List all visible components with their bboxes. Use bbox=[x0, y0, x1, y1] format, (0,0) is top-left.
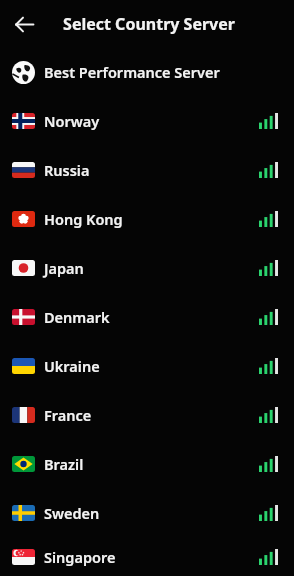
button[interactable]: Norway bbox=[0, 96, 294, 145]
button[interactable]: Russia bbox=[0, 145, 294, 194]
button[interactable]: Hong Kong bbox=[0, 194, 294, 243]
button[interactable]: Brazil bbox=[0, 439, 294, 488]
staticText: Ukraine bbox=[44, 356, 100, 376]
staticText: Russia bbox=[44, 160, 90, 180]
button[interactable]: Singapore bbox=[0, 537, 294, 576]
staticText: Select Country Server bbox=[63, 13, 235, 35]
staticText: France bbox=[44, 405, 92, 425]
staticText: Denmark bbox=[44, 307, 110, 327]
staticText: Japan bbox=[44, 258, 84, 278]
button[interactable]: Best Performance Server bbox=[0, 48, 294, 96]
button[interactable]: Denmark bbox=[0, 292, 294, 341]
button[interactable]: Sweden bbox=[0, 488, 294, 537]
staticText: Norway bbox=[44, 111, 100, 131]
button[interactable]: France bbox=[0, 390, 294, 439]
button[interactable]: Japan bbox=[0, 243, 294, 292]
staticText: Sweden bbox=[44, 503, 100, 523]
button[interactable]: Ukraine bbox=[0, 341, 294, 390]
staticText: Brazil bbox=[44, 454, 84, 474]
staticText: Singapore bbox=[44, 547, 116, 567]
staticText: Hong Kong bbox=[44, 209, 123, 229]
button[interactable]: Back bbox=[6, 6, 42, 42]
staticText: Best Performance Server bbox=[44, 62, 220, 82]
